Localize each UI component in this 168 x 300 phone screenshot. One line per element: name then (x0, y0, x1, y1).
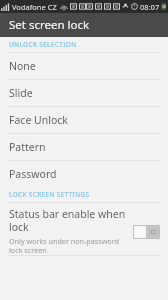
staticText: None (9, 59, 36, 73)
staticText: Vodafone CZ (12, 2, 57, 12)
staticText: UNLOCK SELECTION (9, 40, 77, 49)
staticText: LOCK SCREEN SETTINGS (9, 190, 90, 199)
button[interactable]: Pattern (0, 134, 168, 160)
button[interactable]: Status bar enable when lock (0, 203, 168, 255)
button[interactable]: Password (0, 161, 168, 187)
staticText: Set screen lock (9, 17, 90, 33)
button[interactable]: Slide (0, 80, 168, 106)
staticText: Face Unlock (9, 113, 68, 127)
button[interactable]: Face Unlock (0, 107, 168, 133)
staticText: 08:07 (140, 2, 160, 12)
staticText: Slide (9, 86, 33, 100)
staticText: Password (9, 167, 57, 181)
button[interactable]: None (0, 53, 168, 79)
staticText: Status bar enable when lock (9, 207, 126, 234)
staticText: Only works under non-password lock scree… (9, 236, 126, 255)
staticText: Pattern (9, 140, 46, 154)
button[interactable]: Status bar enable when lock toggle (133, 225, 160, 239)
